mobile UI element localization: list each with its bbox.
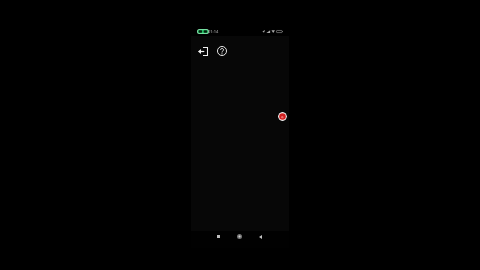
button[interactable]: Recent apps: [214, 232, 223, 241]
staticText: 01:14: [208, 29, 219, 34]
button[interactable]: Back: [256, 232, 265, 241]
button[interactable]: Help: [216, 45, 228, 57]
button[interactable]: Home: [235, 232, 244, 241]
button[interactable]: Log out: [197, 45, 209, 57]
button[interactable]: Record: [278, 112, 287, 121]
